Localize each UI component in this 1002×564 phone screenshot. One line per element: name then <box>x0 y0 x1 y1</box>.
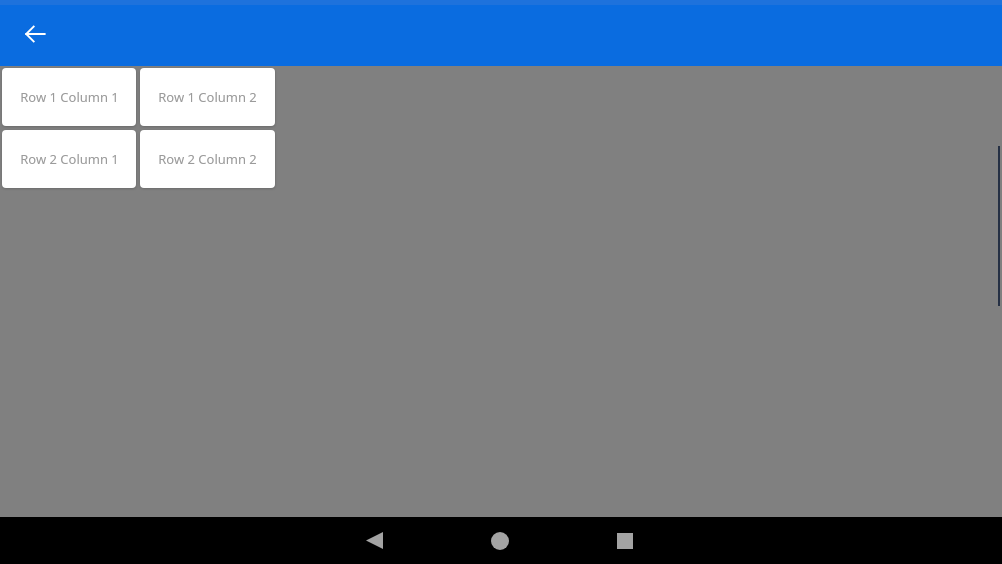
button[interactable]: Row 1 Column 2 <box>140 68 275 126</box>
button[interactable]: Row 2 Column 2 <box>140 130 275 188</box>
button[interactable]: Home <box>470 517 530 564</box>
staticText: Row 2 Column 2 <box>158 150 257 168</box>
button[interactable]: Back <box>11 10 59 58</box>
button[interactable]: Recent apps <box>595 517 655 564</box>
staticText: Row 1 Column 2 <box>158 88 257 106</box>
staticText: Row 2 Column 1 <box>20 150 119 168</box>
button[interactable]: Row 1 Column 1 <box>2 68 136 126</box>
button[interactable]: Row 2 Column 1 <box>2 130 136 188</box>
staticText: Row 1 Column 1 <box>20 88 119 106</box>
button[interactable]: Back <box>344 517 404 564</box>
